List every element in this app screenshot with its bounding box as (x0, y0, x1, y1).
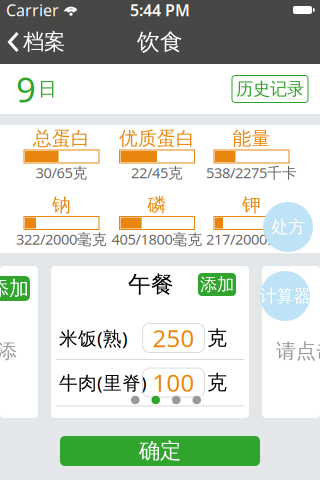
button[interactable]: 添加 (198, 273, 236, 296)
button[interactable]: 历史记录 (232, 75, 308, 102)
staticText: 米饭(熟) (59, 326, 128, 350)
staticText: 钾 (242, 193, 261, 216)
staticText: 磷 (147, 193, 166, 216)
staticText: 9 (16, 66, 36, 112)
staticText: Carrier (6, 0, 59, 21)
staticText: 30/65克 (35, 163, 87, 182)
staticText: 钠 (52, 193, 71, 216)
staticText: 优质蛋白 (119, 127, 195, 150)
staticText: 能量 (232, 127, 270, 150)
staticText: 添 (0, 339, 17, 363)
staticText: 克 (207, 370, 227, 395)
staticText: 牛肉(里脊) (59, 370, 147, 395)
staticText: 322/2000毫克 (16, 229, 107, 249)
staticText: 档案 (23, 29, 65, 55)
button[interactable]: 处方 (263, 202, 313, 252)
button[interactable]: 确定 (60, 436, 260, 466)
staticText: 请点击添加 (276, 339, 320, 363)
staticText: 午餐 (128, 271, 174, 298)
staticText: 计算器 (259, 285, 310, 307)
staticText: 100 (152, 367, 194, 398)
staticText: 538/2275千卡 (206, 163, 297, 182)
button[interactable]: 添加 (0, 276, 30, 301)
staticText: 确定 (139, 438, 181, 464)
staticText: 22/45克 (131, 163, 183, 182)
staticText: 添加 (200, 274, 234, 295)
button[interactable]: 计算器 (260, 271, 310, 321)
button[interactable]: 100 (142, 368, 204, 397)
staticText: 217/2000毫克 (206, 229, 297, 249)
staticText: 饮食 (137, 28, 183, 56)
staticText: 历史记录 (236, 78, 304, 100)
staticText: 250 (152, 322, 194, 354)
staticText: 总蛋白 (33, 127, 90, 150)
staticText: 添加 (0, 276, 29, 301)
staticText: 处方 (271, 216, 305, 238)
button[interactable]: 250 (142, 323, 204, 352)
staticText: 日 (38, 77, 57, 100)
staticText: 5:44 PM (130, 0, 190, 21)
staticText: 405/1800毫克 (111, 229, 202, 249)
staticText: 克 (207, 326, 227, 350)
button[interactable]: 档案 (0, 20, 65, 64)
